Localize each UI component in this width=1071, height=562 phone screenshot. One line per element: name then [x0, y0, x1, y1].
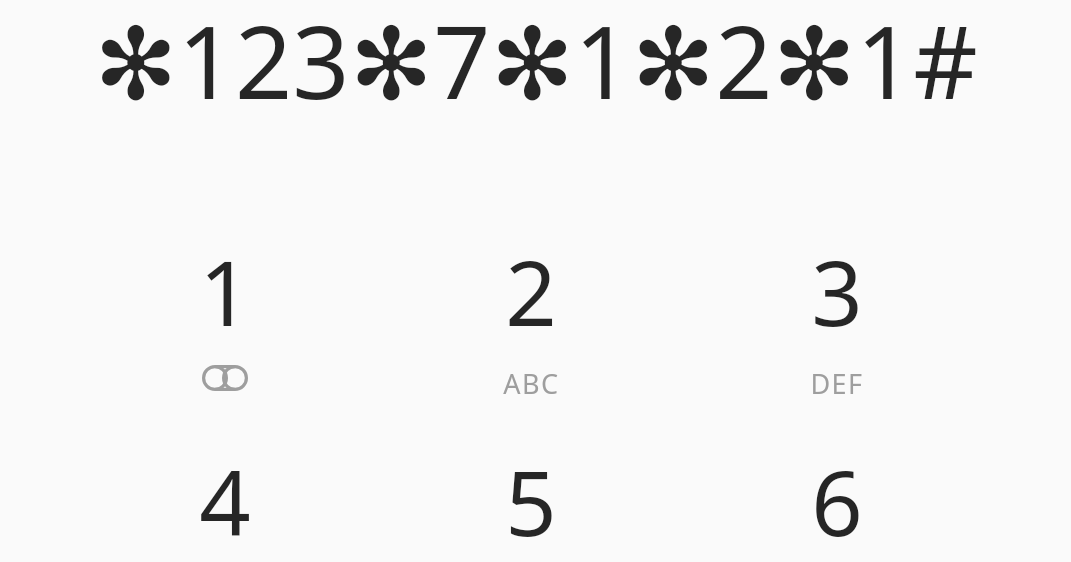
staticText: 6 — [811, 440, 863, 562]
staticText: 2 — [505, 230, 557, 353]
staticText: 5 — [505, 440, 557, 562]
button[interactable]: Dial 6 — [684, 440, 990, 562]
button[interactable]: Dial 3 — [684, 230, 990, 440]
staticText: 1 — [199, 230, 251, 353]
button[interactable]: Dial 5 — [378, 440, 684, 562]
staticText: 4 — [199, 440, 251, 562]
button[interactable]: Dial 4 — [72, 440, 378, 562]
staticText: DEF — [810, 365, 864, 402]
button[interactable]: Dial 1 voicemail — [72, 230, 378, 440]
staticText: 3 — [811, 230, 863, 353]
staticText: ✻123✻7✻1✻2✻1# — [94, 0, 978, 122]
staticText: ABC — [503, 365, 560, 402]
button[interactable]: ✻123✻7✻1✻2✻1# — [0, 0, 1071, 130]
button[interactable]: Dial 2 — [378, 230, 684, 440]
